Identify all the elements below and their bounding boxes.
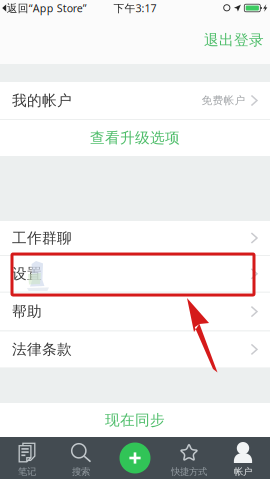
staticText: 免费帐户 xyxy=(202,94,246,107)
staticText: 下午3:17 xyxy=(113,1,156,15)
staticText: 笔记 xyxy=(18,466,36,477)
staticText: 返回“App Store” xyxy=(7,1,87,15)
button[interactable]: 笔记 xyxy=(0,437,54,479)
staticText: 查看升级选项 xyxy=(90,129,180,147)
staticText: 退出登录 xyxy=(204,31,264,49)
button[interactable]: 退出登录 xyxy=(192,24,270,56)
button[interactable]: 查看升级选项 xyxy=(0,120,270,156)
button[interactable]: 快捷方式 xyxy=(162,437,216,479)
staticText: 现在同步 xyxy=(105,411,165,429)
button[interactable]: 现在同步 xyxy=(0,403,270,437)
staticText: 帮助 xyxy=(12,303,42,321)
button[interactable]: 设置 xyxy=(0,256,270,292)
staticText: 工作群聊 xyxy=(12,229,72,247)
button[interactable]: 搜索 xyxy=(54,437,108,479)
button[interactable]: 帐户 xyxy=(216,437,270,479)
staticText: 快捷方式 xyxy=(171,466,207,477)
button[interactable]: 我的帐户 xyxy=(0,82,270,119)
staticText: 我的帐户 xyxy=(12,91,72,109)
staticText: 搜索 xyxy=(72,466,90,477)
button[interactable]: 工作群聊 xyxy=(0,221,270,255)
button[interactable]: 帮助 xyxy=(0,293,270,331)
staticText: 帐户 xyxy=(234,466,252,477)
button[interactable]: New note xyxy=(108,437,162,479)
staticText: 设置 xyxy=(12,265,42,283)
button[interactable]: 法律条款 xyxy=(0,331,270,367)
staticText: 法律条款 xyxy=(12,340,72,358)
